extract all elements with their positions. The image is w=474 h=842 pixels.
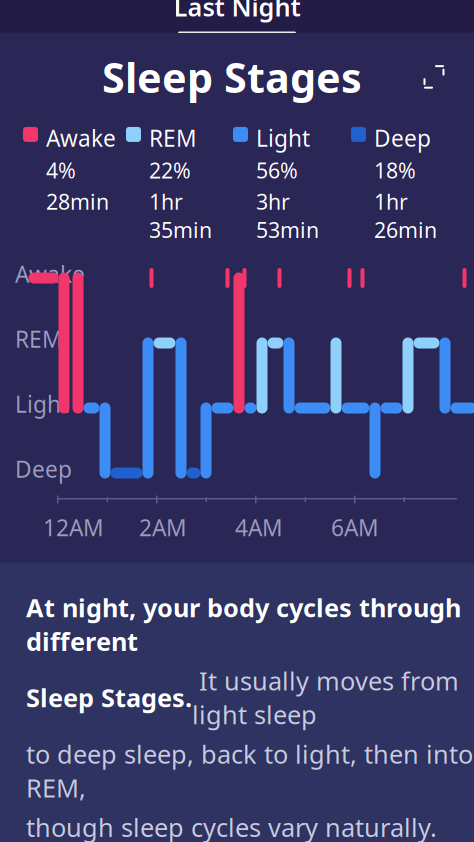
staticText: 1hr 26min — [374, 187, 437, 244]
staticText: At night, your body cycles through diffe… — [26, 591, 461, 658]
staticText: Light — [256, 123, 310, 153]
staticText: 6AM — [331, 512, 379, 543]
staticText: 2AM — [139, 512, 187, 543]
staticText: Awake — [15, 259, 85, 289]
staticText: 18% — [374, 156, 416, 184]
staticText: It usually moves from light sleep — [192, 664, 459, 731]
staticText: 56% — [256, 156, 298, 184]
staticText: Deep — [15, 454, 72, 484]
staticText: though sleep cycles vary naturally. — [26, 810, 437, 842]
staticText: 28min — [46, 187, 109, 216]
staticText: 22% — [149, 156, 191, 184]
staticText: 3hr 53min — [256, 187, 319, 244]
staticText: 12AM — [43, 512, 104, 543]
staticText: Light — [15, 389, 69, 419]
staticText: 4AM — [235, 512, 283, 543]
staticText: REM — [149, 123, 197, 153]
staticText: 4% — [46, 156, 76, 184]
staticText: Sleep Stages — [102, 49, 362, 104]
staticText: Sleep Stages. — [26, 681, 192, 714]
staticText: 1hr 35min — [149, 187, 212, 244]
staticText: Awake — [46, 123, 116, 153]
button[interactable]: Collapse — [415, 57, 453, 96]
staticText: REM — [15, 324, 63, 354]
staticText: Deep — [374, 123, 431, 153]
staticText: to deep sleep, back to light, then into … — [26, 737, 473, 804]
staticText: Last Night — [173, 0, 300, 23]
button[interactable]: Last Night — [173, 0, 300, 34]
